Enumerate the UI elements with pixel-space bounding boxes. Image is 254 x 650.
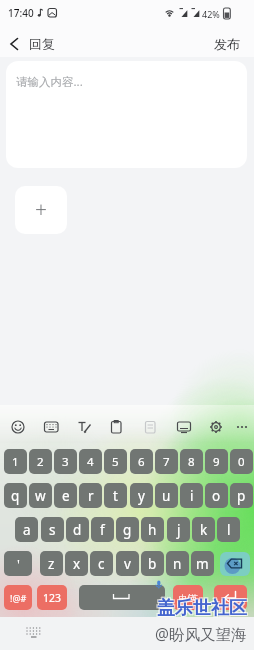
button[interactable] [139, 416, 161, 438]
staticText: x [73, 555, 81, 573]
button[interactable]: 1 [4, 449, 27, 474]
button[interactable]: !@# [4, 585, 32, 610]
staticText: g [123, 521, 132, 539]
staticText: n [173, 555, 182, 573]
button[interactable]: 0 [230, 449, 253, 474]
button[interactable]: 请输入内容... [6, 61, 247, 168]
staticText: 3 [62, 454, 69, 470]
button[interactable] [7, 416, 29, 438]
button[interactable]: e [54, 483, 77, 508]
button[interactable] [22, 622, 46, 646]
staticText: 42% [202, 8, 220, 20]
staticText: h [148, 521, 157, 539]
staticText: 中/英 [179, 592, 198, 603]
button[interactable] [220, 552, 250, 576]
staticText: f [100, 521, 105, 539]
staticText: 4 [87, 454, 94, 470]
button[interactable]: 4 [79, 449, 102, 474]
staticText: e [62, 487, 70, 505]
button[interactable]: g [116, 517, 139, 542]
button[interactable] [40, 416, 62, 438]
staticText: 17:40 [8, 6, 34, 20]
staticText: w [35, 487, 46, 505]
staticText: 盖乐世社区 [156, 596, 246, 619]
staticText: 回复 [29, 36, 55, 52]
button[interactable]: 5 [104, 449, 127, 474]
staticText: l [227, 521, 231, 539]
button[interactable]: l [217, 517, 240, 542]
button[interactable]: 3 [54, 449, 77, 474]
button[interactable] [4, 32, 26, 54]
staticText: ' [17, 555, 20, 573]
button[interactable]: b [141, 551, 164, 576]
staticText: 9 [213, 454, 220, 470]
staticText: d [73, 521, 82, 539]
staticText: 0 [238, 454, 245, 470]
button[interactable]: q [4, 483, 27, 508]
staticText: q [11, 487, 20, 505]
button[interactable]: 123 [37, 585, 67, 610]
staticText: 5 [112, 454, 119, 470]
staticText: 7 [163, 454, 170, 470]
staticText: j [177, 521, 181, 539]
button[interactable]: j [167, 517, 190, 542]
button[interactable] [173, 416, 195, 438]
button[interactable]: u [155, 483, 178, 508]
button[interactable] [79, 585, 165, 610]
button[interactable] [205, 416, 227, 438]
staticText: 盖乐世社区 [157, 597, 247, 620]
button[interactable]: d [66, 517, 89, 542]
staticText: t [113, 487, 118, 505]
button[interactable]: w [29, 483, 52, 508]
button[interactable]: i [180, 483, 203, 508]
staticText: s [49, 521, 56, 539]
button[interactable]: ' [4, 551, 32, 576]
button[interactable]: a [15, 517, 38, 542]
button[interactable]: c [90, 551, 113, 576]
staticText: 8 [188, 454, 195, 470]
staticText: b [148, 555, 157, 573]
button[interactable]: y [130, 483, 153, 508]
staticText: 6 [138, 454, 145, 470]
staticText: 1 [12, 454, 19, 470]
button[interactable]: r [79, 483, 102, 508]
button[interactable]: 发布 [214, 36, 240, 52]
button[interactable]: x [65, 551, 88, 576]
button[interactable]: 7 [155, 449, 178, 474]
staticText: 2 [37, 454, 44, 470]
staticText: 盖乐世社区 [158, 596, 248, 619]
button[interactable] [73, 416, 95, 438]
button[interactable]: 中/英 [173, 585, 203, 610]
button[interactable]: + [15, 186, 67, 234]
button[interactable]: f [91, 517, 114, 542]
button[interactable]: p [230, 483, 253, 508]
button[interactable] [214, 585, 247, 610]
staticText: v [124, 555, 131, 573]
button[interactable]: n [166, 551, 189, 576]
staticText: r [88, 487, 94, 505]
staticText: 盖乐世社区 [156, 598, 246, 621]
staticText: 盖乐世社区 [158, 598, 248, 621]
staticText: p [237, 487, 246, 505]
button[interactable]: o [205, 483, 228, 508]
button[interactable] [105, 416, 127, 438]
button[interactable]: t [104, 483, 127, 508]
button[interactable] [230, 416, 252, 438]
staticText: k [200, 521, 208, 539]
button[interactable]: v [116, 551, 139, 576]
button[interactable]: 8 [180, 449, 203, 474]
staticText: 请输入内容... [16, 74, 83, 90]
button[interactable]: k [192, 517, 215, 542]
staticText: u [162, 487, 171, 505]
staticText: z [48, 555, 55, 573]
button[interactable]: 9 [205, 449, 228, 474]
button[interactable]: h [141, 517, 164, 542]
button[interactable]: z [40, 551, 63, 576]
button[interactable]: s [41, 517, 64, 542]
staticText: + [35, 196, 47, 225]
button[interactable]: m [191, 551, 214, 576]
button[interactable]: 2 [29, 449, 52, 474]
staticText: o [212, 487, 221, 505]
button[interactable]: 6 [130, 449, 153, 474]
staticText: !@# [10, 592, 27, 604]
